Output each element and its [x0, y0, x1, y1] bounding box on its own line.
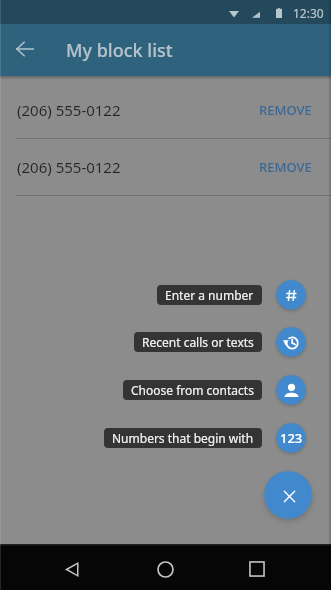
staticText: Recent calls or texts	[142, 334, 254, 350]
button[interactable]: REMOVE	[259, 158, 312, 176]
button[interactable]: Recent calls or texts	[134, 327, 306, 357]
staticText: My block list	[66, 38, 173, 63]
staticText: 12:30	[293, 5, 324, 21]
button[interactable]: Home	[141, 544, 189, 590]
button[interactable]: Choose from contacts	[123, 375, 306, 405]
staticText: Choose from contacts	[131, 382, 254, 398]
staticText: REMOVE	[259, 158, 312, 176]
staticText: (206) 555-0122	[17, 157, 121, 177]
button[interactable]: REMOVE	[259, 101, 312, 119]
button[interactable]: Back	[48, 544, 96, 590]
button[interactable]: (206) 555-0122	[0, 139, 331, 195]
staticText: (206) 555-0122	[17, 100, 121, 120]
button[interactable]: Close menu	[264, 471, 312, 519]
staticText: Enter a number	[165, 287, 254, 303]
button[interactable]: Recents	[233, 544, 281, 590]
button[interactable]: Back	[0, 24, 52, 76]
button[interactable]: (206) 555-0122	[0, 82, 331, 138]
button[interactable]: Numbers that begin with	[104, 423, 306, 453]
staticText: 123	[280, 429, 303, 447]
staticText: Numbers that begin with	[112, 430, 254, 446]
button[interactable]: Enter a number	[157, 280, 306, 310]
staticText: REMOVE	[259, 101, 312, 119]
